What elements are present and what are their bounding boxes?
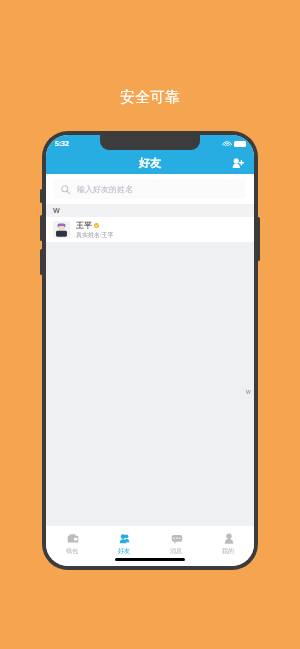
button[interactable]: 王平 bbox=[46, 217, 254, 242]
staticText: 消息 bbox=[170, 547, 182, 555]
button[interactable]: 消息 bbox=[150, 530, 202, 557]
button[interactable]: 输入好友的姓名 bbox=[54, 179, 246, 199]
button[interactable]: Add friend bbox=[228, 154, 246, 172]
staticText: 输入好友的姓名 bbox=[77, 184, 133, 194]
staticText: 好友 bbox=[118, 547, 130, 555]
staticText: 好友 bbox=[139, 156, 161, 170]
button[interactable]: 我的 bbox=[202, 530, 254, 557]
staticText: 安全可靠 bbox=[0, 88, 300, 107]
staticText: 王平 bbox=[76, 220, 92, 230]
staticText: 5:32 bbox=[55, 139, 69, 149]
staticText: 钱包 bbox=[66, 547, 78, 555]
staticText: W bbox=[246, 389, 251, 396]
button[interactable]: 好友 bbox=[98, 530, 150, 557]
staticText: W bbox=[53, 206, 60, 216]
staticText: 我的 bbox=[222, 547, 234, 555]
staticText: 真实姓名:王平 bbox=[76, 231, 114, 239]
button[interactable]: 钱包 bbox=[46, 530, 98, 557]
